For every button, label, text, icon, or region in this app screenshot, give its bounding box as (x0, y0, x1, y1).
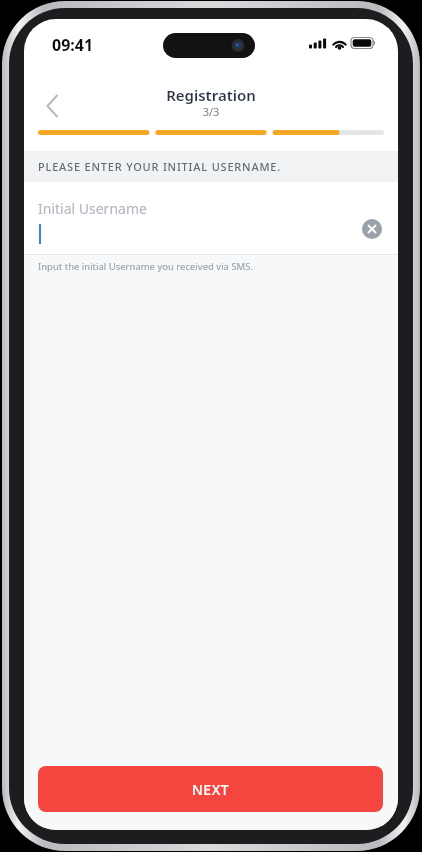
staticText: PLEASE ENTER YOUR INITIAL USERNAME. (38, 159, 282, 174)
staticText: NEXT (192, 780, 230, 799)
button[interactable]: NEXT (38, 766, 383, 812)
staticText: 09:41 (52, 34, 94, 56)
button[interactable] (362, 219, 382, 239)
staticText: Input the initial Username you received … (38, 260, 253, 273)
staticText: Registration (24, 85, 398, 105)
staticText: Initial Username (38, 199, 147, 218)
button[interactable] (32, 86, 72, 126)
button[interactable]: Initial Username (24, 182, 398, 255)
staticText: 3/3 (24, 104, 398, 119)
